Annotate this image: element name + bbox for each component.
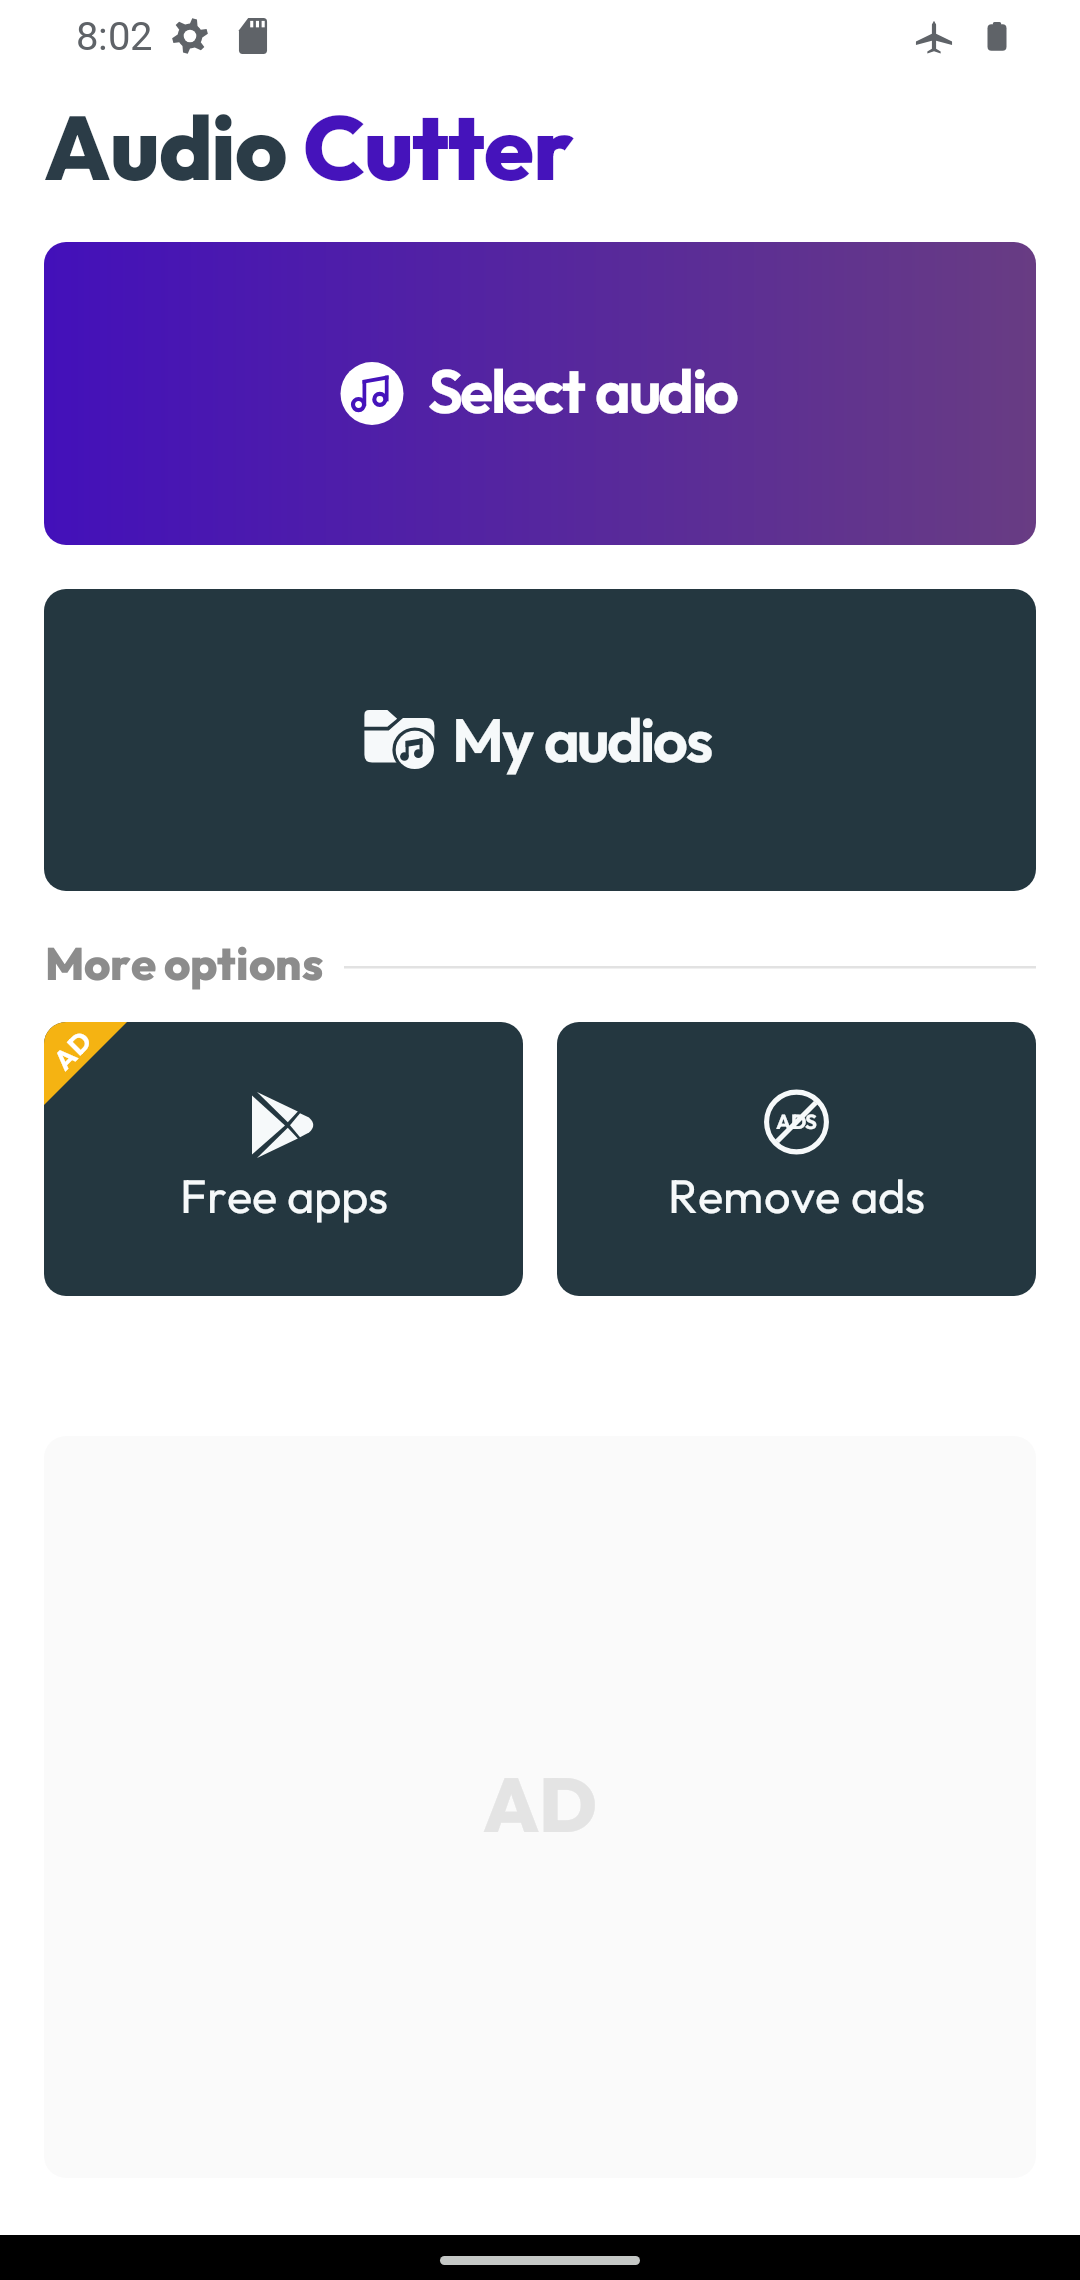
button[interactable]: Select audio	[44, 242, 1036, 545]
button[interactable]: Free apps	[44, 1022, 523, 1296]
button[interactable]: My audios	[44, 589, 1036, 891]
button[interactable]: Remove ads	[557, 1022, 1036, 1296]
